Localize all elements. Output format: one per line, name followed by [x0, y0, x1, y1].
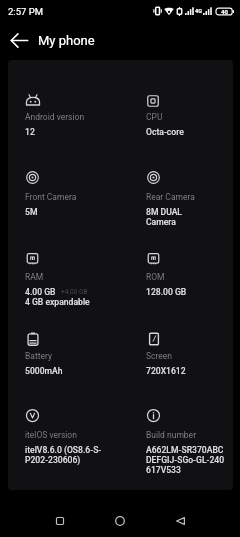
staticText: 617V533: [146, 465, 181, 475]
staticText: Android version: [25, 112, 85, 122]
staticText: Front Camera: [25, 192, 77, 202]
button[interactable]: Rear Camera: [146, 170, 233, 227]
staticText: RAM: [25, 272, 44, 282]
staticText: ROM: [146, 272, 165, 282]
button[interactable]: Home: [104, 505, 136, 537]
button[interactable]: Front Camera: [25, 170, 143, 217]
staticText: 128.00 GB: [146, 287, 187, 297]
staticText: 4G: [195, 8, 202, 14]
button[interactable]: Back: [164, 505, 196, 537]
button[interactable]: RAM: [25, 251, 143, 307]
staticText: Build number: [146, 430, 197, 440]
staticText: itelV8.6.0 (OS8.6-S-: [25, 445, 102, 455]
staticText: 4 GB expandable: [25, 297, 90, 307]
staticText: Screen: [146, 351, 173, 361]
button[interactable]: CPU: [146, 94, 233, 137]
staticText: +4.00 GB: [61, 288, 88, 296]
button[interactable]: Android version: [25, 92, 143, 137]
staticText: Battery: [25, 351, 52, 361]
button[interactable]: Screen: [146, 331, 233, 376]
staticText: 8M DUAL: [146, 207, 183, 217]
button[interactable]: Build number: [146, 408, 233, 475]
staticText: CPU: [146, 112, 163, 122]
staticText: 5000mAh: [25, 366, 63, 376]
button[interactable]: Recents: [44, 505, 76, 537]
staticText: itelOS version: [25, 430, 77, 440]
staticText: Rear Camera: [146, 192, 195, 202]
staticText: 40: [221, 8, 228, 15]
button[interactable]: itelOS version: [25, 408, 143, 465]
staticText: 12: [25, 127, 35, 137]
staticText: A662LM-SR370ABC: [146, 445, 224, 455]
staticText: 4.00 GB: [25, 287, 56, 297]
staticText: 2:57 PM: [8, 6, 43, 17]
staticText: P202-230606): [25, 455, 81, 465]
staticText: DEFGIJ-SGo-GL-240: [146, 455, 225, 465]
staticText: Camera: [146, 217, 176, 227]
button[interactable]: Battery: [25, 331, 143, 376]
staticText: 720X1612: [146, 366, 186, 376]
staticText: Octa-core: [146, 127, 184, 137]
staticText: My phone: [38, 33, 95, 48]
button[interactable]: Back: [7, 28, 31, 52]
staticText: 5M: [25, 207, 38, 217]
button[interactable]: ROM: [146, 251, 233, 297]
